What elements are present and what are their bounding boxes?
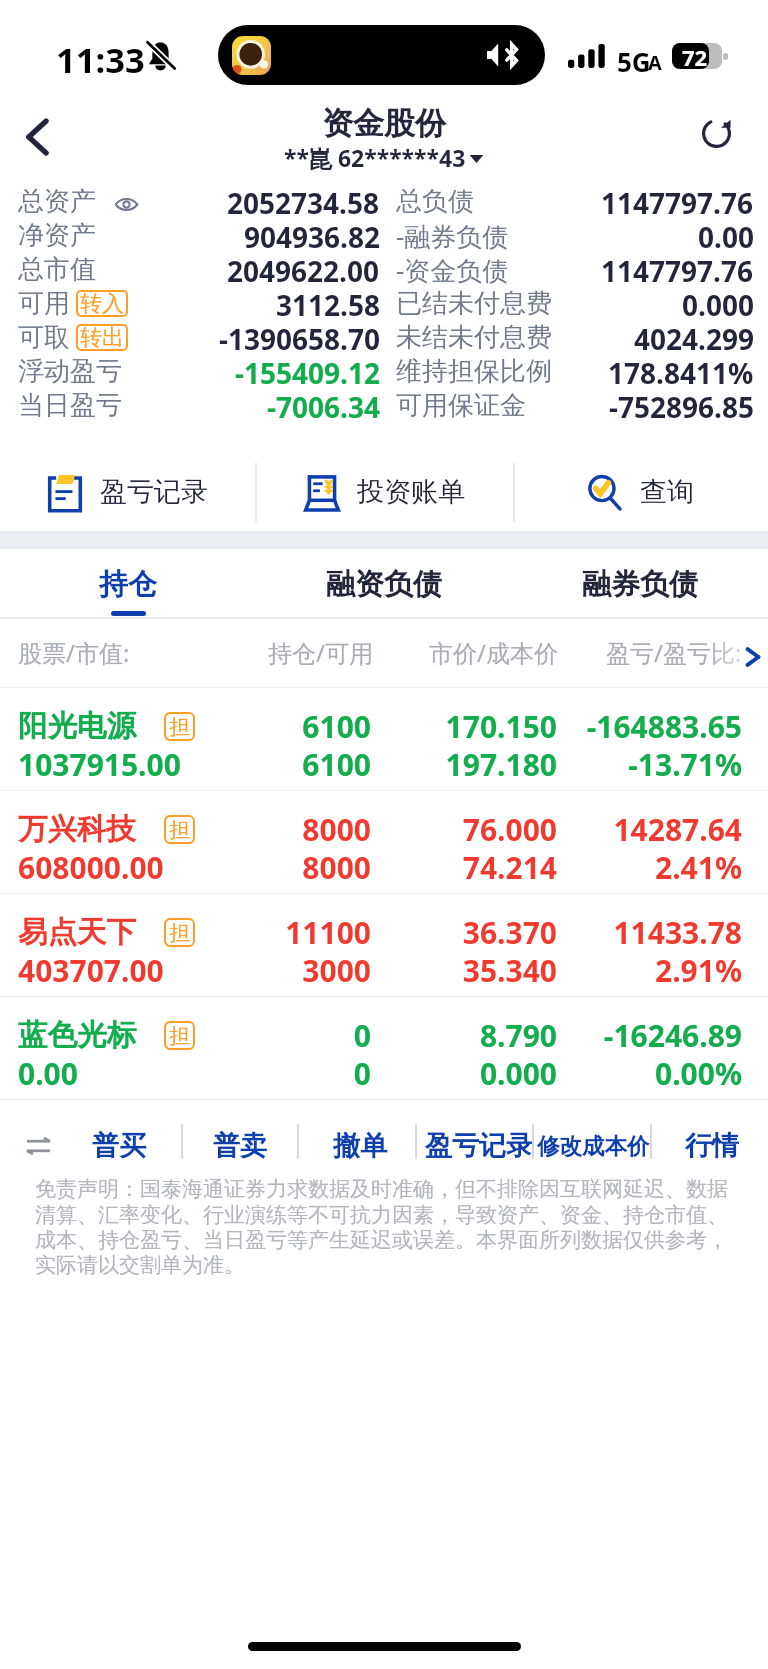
staticText: 178.8411% [608,354,754,388]
button[interactable]: 阳光电源 [0,688,768,790]
button[interactable]: 易点天下 [0,894,768,996]
staticText: 当日盈亏 [18,389,122,422]
staticText: -13.71% [560,744,742,785]
staticText: 0 [200,1053,371,1094]
staticText: 万兴科技 [18,811,136,848]
staticText: 35.340 [400,950,557,991]
staticText: 8000 [200,847,371,888]
staticText: 总市值 [18,253,96,286]
staticText: 2.41% [560,847,742,888]
staticText: 0.000 [682,286,754,320]
button[interactable]: 查询 [514,442,768,542]
staticText: 撤单 [333,1129,387,1163]
staticText: 5G [617,44,651,79]
button[interactable]: 行情 [642,1111,768,1181]
staticText: 2049622.00 [227,252,380,286]
staticText: 修改成本价 [537,1132,650,1160]
staticText: 转出 [80,324,124,351]
staticText: 11100 [200,912,371,953]
staticText: 查询 [640,475,694,509]
staticText: A [648,49,662,76]
staticText: 0.00% [560,1053,742,1094]
staticText: 融资负债 [326,566,442,603]
button[interactable]: Hide amounts [115,198,138,211]
button[interactable]: Back [3,103,71,171]
staticText: 资金股份 [322,104,446,143]
staticText: 11:33 [56,36,145,83]
staticText: 担 [169,714,190,740]
staticText: 可用 [18,287,70,320]
staticText: 持仓/可用 [268,636,373,669]
button[interactable]: 盈亏记录 [409,1111,549,1181]
button[interactable]: 投资账单 [256,442,514,542]
button[interactable]: 融资负债 [256,549,512,618]
button[interactable]: **崑 62******43 [284,142,484,173]
staticText: -1390658.70 [219,320,380,354]
button[interactable]: 盈亏记录 [0,442,256,542]
button[interactable]: 蓝色光标 [0,997,768,1099]
staticText: 融券负债 [582,566,698,603]
button[interactable]: 转出 [76,324,128,351]
staticText: 0.000 [400,1053,557,1094]
staticText: 未结未付息费 [396,321,552,354]
staticText: 净资产 [18,219,96,252]
staticText: 2052734.58 [227,184,380,218]
staticText: 0 [200,1015,371,1056]
staticText: 8000 [200,809,371,850]
staticText: 1037915.00 [18,744,181,785]
button[interactable]: 修改成本价 [523,1111,663,1181]
button[interactable]: Switch [10,1111,66,1181]
staticText: 普卖 [213,1129,267,1163]
staticText: 持仓 [99,566,157,603]
staticText: 股票/市值: [18,636,130,669]
staticText: 14287.64 [560,809,742,850]
button[interactable]: 普买 [49,1111,189,1181]
staticText: -7006.34 [267,388,380,422]
staticText: 可用保证金 [396,389,526,422]
button[interactable]: More columns [744,644,764,670]
staticText: 蓝色光标 [18,1017,136,1054]
staticText: -16246.89 [560,1015,742,1056]
staticText: 1147797.76 [601,184,754,218]
staticText: 72 [682,42,708,68]
staticText: 转入 [80,290,124,317]
staticText: 8.790 [400,1015,557,1056]
staticText: 608000.00 [18,847,164,888]
staticText: 904936.82 [244,218,380,252]
staticText: 易点天下 [18,914,136,951]
staticText: 担 [169,817,190,843]
staticText: 197.180 [400,744,557,785]
staticText: 阳光电源 [18,708,136,745]
staticText: 担 [169,920,190,946]
button[interactable]: 融券负债 [512,549,768,618]
staticText: -融券负债 [396,218,509,252]
staticText: **崑 62******43 [284,142,466,173]
staticText: 维持担保比例 [396,355,552,388]
staticText: 4024.299 [634,320,754,354]
staticText: 投资账单 [357,475,465,509]
button[interactable]: 撤单 [290,1111,430,1181]
staticText: 170.150 [400,706,557,747]
staticText: 市价/成本价 [429,636,558,669]
button[interactable]: Refresh [685,102,747,164]
staticText: 3000 [200,950,371,991]
button[interactable]: 普卖 [170,1111,310,1181]
button[interactable]: 万兴科技 [0,791,768,893]
staticText: -资金负债 [396,252,509,286]
staticText: 74.214 [400,847,557,888]
staticText: 403707.00 [18,950,164,991]
staticText: 浮动盈亏 [18,355,122,388]
staticText: 行情 [685,1129,739,1163]
staticText: -752896.85 [609,388,754,422]
button[interactable]: 持仓 [0,549,256,618]
button[interactable]: 转入 [76,290,128,317]
staticText: 总负债 [396,185,474,218]
staticText: 盈亏记录 [100,475,208,509]
staticText: -164883.65 [560,706,742,747]
staticText: 普买 [92,1129,146,1163]
staticText: 可取 [18,321,70,354]
staticText: 1147797.76 [601,252,754,286]
staticText: 2.91% [560,950,742,991]
staticText: 盈亏记录 [425,1129,533,1163]
staticText: 3112.58 [276,286,380,320]
